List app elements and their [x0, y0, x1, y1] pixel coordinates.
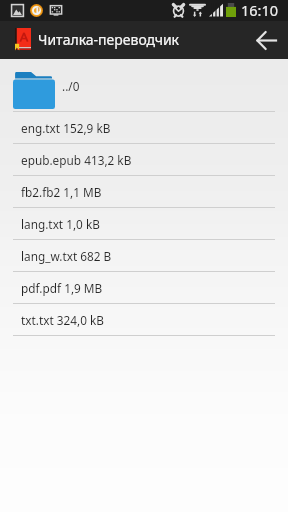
staticText: fb2.fb2 1,1 MB — [21, 184, 102, 200]
staticText: epub.epub 413,2 kB — [21, 152, 132, 168]
button[interactable]: txt.txt 324,0 kB — [0, 304, 288, 335]
staticText: Читалка-переводчик — [38, 30, 180, 49]
staticText: eng.txt 152,9 kB — [21, 120, 111, 136]
button[interactable]: epub.epub 413,2 kB — [0, 144, 288, 175]
button[interactable]: ../0 — [0, 59, 288, 111]
staticText: txt.txt 324,0 kB — [21, 312, 104, 328]
staticText: pdf.pdf 1,9 MB — [21, 280, 103, 296]
button[interactable]: pdf.pdf 1,9 MB — [0, 272, 288, 303]
button[interactable]: fb2.fb2 1,1 MB — [0, 176, 288, 207]
staticText: ../0 — [62, 78, 80, 94]
button[interactable]: lang_w.txt 682 B — [0, 240, 288, 271]
button[interactable]: Back — [245, 21, 288, 59]
button[interactable]: lang.txt 1,0 kB — [0, 208, 288, 239]
staticText: 16:10 — [241, 0, 279, 20]
button[interactable]: eng.txt 152,9 kB — [0, 112, 288, 143]
staticText: lang_w.txt 682 B — [21, 248, 112, 264]
staticText: lang.txt 1,0 kB — [21, 216, 100, 232]
